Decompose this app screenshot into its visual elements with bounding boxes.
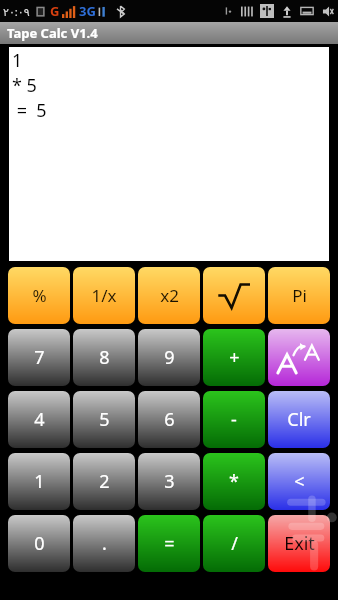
staticText: Clr xyxy=(287,407,311,432)
button[interactable]: 6 xyxy=(138,391,200,448)
staticText: 1 xyxy=(12,48,23,73)
button[interactable]: 7 xyxy=(8,329,70,386)
button[interactable]: * xyxy=(203,453,265,510)
staticText: * 5 xyxy=(12,73,37,98)
button[interactable]: Square root xyxy=(203,267,265,324)
staticText: G xyxy=(50,2,60,20)
staticText: Exit xyxy=(284,531,315,556)
button[interactable]: Clr xyxy=(268,391,330,448)
staticText: - xyxy=(231,407,237,432)
staticText: 0 xyxy=(34,531,45,556)
staticText: / xyxy=(231,531,238,556)
staticText: x2 xyxy=(160,284,179,307)
staticText: Tape Calc V1.4 xyxy=(7,24,98,42)
button[interactable]: Change font xyxy=(268,329,330,386)
staticText: 3 xyxy=(164,469,175,494)
button[interactable]: - xyxy=(203,391,265,448)
staticText: 6 xyxy=(164,407,175,432)
staticText: = 5 xyxy=(12,98,47,123)
staticText: * xyxy=(229,469,239,494)
button[interactable]: < xyxy=(268,453,330,510)
button[interactable]: 9 xyxy=(138,329,200,386)
button[interactable]: x2 xyxy=(138,267,200,324)
staticText: 4 xyxy=(34,407,45,432)
button[interactable]: 8 xyxy=(73,329,135,386)
staticText: 7 xyxy=(34,345,45,370)
staticText: Pi xyxy=(292,284,307,307)
staticText: 3G xyxy=(79,2,96,20)
staticText: < xyxy=(294,469,305,494)
staticText: 9 xyxy=(164,345,175,370)
button[interactable]: 2 xyxy=(73,453,135,510)
staticText: = xyxy=(164,531,175,556)
button[interactable]: 1 xyxy=(9,47,329,261)
staticText: 2 xyxy=(99,469,110,494)
button[interactable]: = xyxy=(138,515,200,572)
button[interactable]: % xyxy=(8,267,70,324)
staticText: % xyxy=(32,284,47,307)
staticText: ۲۰:۰۹ xyxy=(3,4,30,19)
button[interactable]: + xyxy=(203,329,265,386)
button[interactable]: 0 xyxy=(8,515,70,572)
button[interactable]: 3 xyxy=(138,453,200,510)
staticText: + xyxy=(229,345,240,370)
staticText: 5 xyxy=(99,407,110,432)
staticText: 1/x xyxy=(91,284,117,307)
staticText: . xyxy=(102,531,107,556)
button[interactable]: Pi xyxy=(268,267,330,324)
staticText: 8 xyxy=(99,345,110,370)
button[interactable]: 5 xyxy=(73,391,135,448)
staticText: 1 xyxy=(34,469,45,494)
button[interactable]: . xyxy=(73,515,135,572)
button[interactable]: 1 xyxy=(8,453,70,510)
button[interactable]: 4 xyxy=(8,391,70,448)
button[interactable]: 1/x xyxy=(73,267,135,324)
button[interactable]: Exit xyxy=(268,515,330,572)
button[interactable]: / xyxy=(203,515,265,572)
